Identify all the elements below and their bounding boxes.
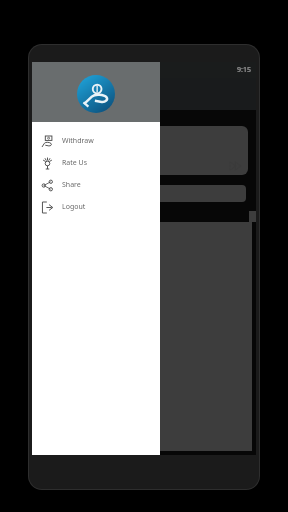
staticText: Rate Us: [62, 158, 88, 168]
button[interactable]: Logout: [32, 196, 160, 218]
other: Profile logo: [77, 75, 115, 113]
staticText: Share: [62, 180, 81, 190]
button[interactable]: [32, 62, 256, 455]
staticText: Withdraw: [62, 136, 94, 146]
button[interactable]: Profile logo: [32, 62, 160, 122]
button[interactable]: Withdraw: [32, 130, 160, 152]
button[interactable]: [40, 126, 248, 175]
staticText: 9:15: [237, 65, 251, 75]
button[interactable]: [36, 185, 246, 202]
button[interactable]: Share: [32, 174, 160, 196]
staticText: Logout: [62, 202, 86, 212]
button[interactable]: Rate Us: [32, 152, 160, 174]
